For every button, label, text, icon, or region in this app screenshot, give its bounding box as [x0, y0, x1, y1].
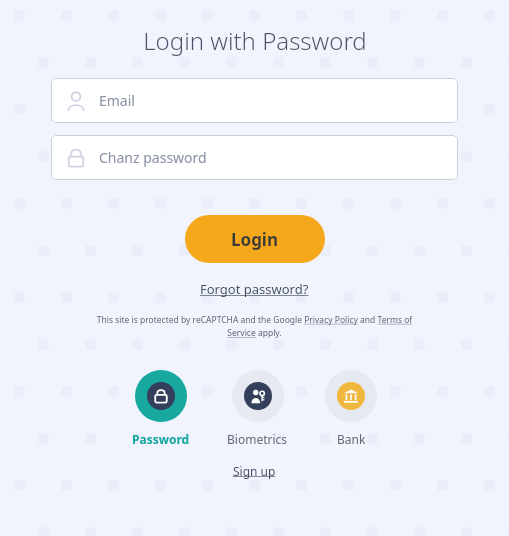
staticText: Login: [231, 228, 279, 251]
staticText: Email: [99, 91, 135, 110]
staticText: Biometrics: [227, 431, 288, 447]
staticText: This site is protected by reCAPTCHA and …: [92, 314, 417, 339]
staticText: Password: [132, 431, 190, 447]
staticText: Sign up: [233, 463, 276, 479]
staticText: Forgot password?: [200, 280, 309, 298]
button[interactable]: Login: [185, 215, 325, 263]
button[interactable]: Biometrics: [225, 370, 290, 447]
button[interactable]: Email: [51, 78, 458, 123]
button[interactable]: Password: [130, 370, 192, 447]
staticText: Login with Password: [143, 24, 367, 57]
staticText: Bank: [337, 431, 366, 447]
button[interactable]: Bank: [323, 370, 379, 447]
staticText: Chanz password: [99, 148, 207, 167]
button[interactable]: Forgot password?: [196, 278, 313, 300]
button[interactable]: Chanz password: [51, 135, 458, 180]
button[interactable]: Sign up: [227, 461, 282, 481]
